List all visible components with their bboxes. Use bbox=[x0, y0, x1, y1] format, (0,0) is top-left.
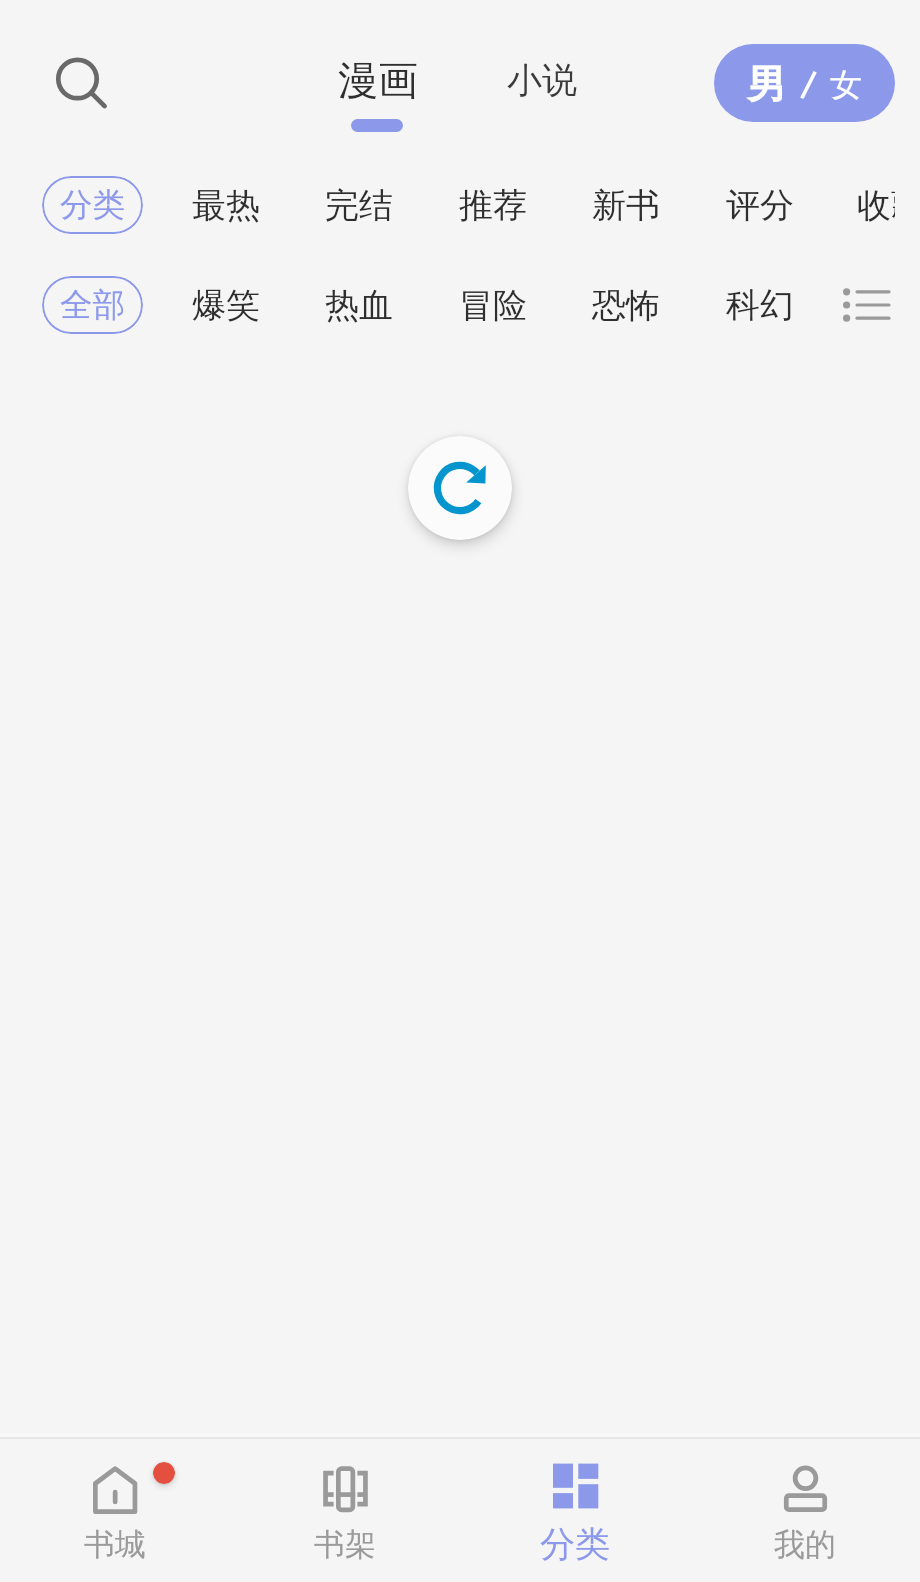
staticText: 恐怖 bbox=[592, 284, 660, 327]
button[interactable]: 评分 bbox=[712, 176, 807, 234]
staticText: 分类 bbox=[540, 1522, 610, 1566]
button[interactable]: 收藏 bbox=[843, 176, 895, 234]
staticText: 热血 bbox=[325, 284, 393, 327]
button[interactable]: 爆笑 bbox=[178, 276, 273, 334]
button[interactable]: 推荐 bbox=[445, 176, 540, 234]
staticText: 漫画 bbox=[338, 55, 418, 105]
staticText: 小说 bbox=[507, 58, 577, 102]
button[interactable]: Refresh bbox=[408, 436, 512, 540]
button[interactable]: 分类 bbox=[42, 176, 143, 234]
button[interactable]: 书城 bbox=[0, 1433, 230, 1582]
staticText: 我的 bbox=[774, 1525, 836, 1564]
button[interactable]: 分类 bbox=[460, 1433, 690, 1582]
staticText: 新书 bbox=[592, 184, 660, 227]
staticText: 冒险 bbox=[459, 284, 527, 327]
button[interactable]: 我的 bbox=[690, 1433, 920, 1582]
staticText: 分类 bbox=[60, 185, 125, 226]
staticText: 科幻 bbox=[726, 284, 794, 327]
staticText: 完结 bbox=[325, 184, 393, 227]
button[interactable]: 科幻 bbox=[712, 276, 807, 334]
button[interactable]: 新书 bbox=[578, 176, 673, 234]
button[interactable]: 恐怖 bbox=[578, 276, 673, 334]
staticText: 全部 bbox=[60, 285, 125, 326]
staticText: 书架 bbox=[314, 1525, 376, 1564]
staticText: 推荐 bbox=[459, 184, 527, 227]
button[interactable]: 完结 bbox=[311, 176, 406, 234]
button[interactable]: 最热 bbox=[178, 176, 273, 234]
button[interactable]: 小说 bbox=[488, 42, 596, 112]
staticText: 男 bbox=[747, 60, 786, 109]
button[interactable]: 冒险 bbox=[445, 276, 540, 334]
staticText: 书城 bbox=[84, 1525, 146, 1564]
staticText: 女 bbox=[830, 65, 862, 105]
button[interactable]: 男 bbox=[714, 44, 895, 122]
button[interactable]: 热血 bbox=[311, 276, 406, 334]
button[interactable]: 漫画 bbox=[324, 42, 432, 132]
staticText: 评分 bbox=[726, 184, 794, 227]
button[interactable]: 全部 bbox=[42, 276, 143, 334]
staticText: 爆笑 bbox=[192, 284, 260, 327]
staticText: 最热 bbox=[192, 184, 260, 227]
button[interactable]: 书架 bbox=[230, 1433, 460, 1582]
button[interactable]: Search bbox=[38, 39, 118, 119]
staticText: 收藏 bbox=[857, 184, 895, 227]
button[interactable]: List view bbox=[832, 270, 902, 340]
